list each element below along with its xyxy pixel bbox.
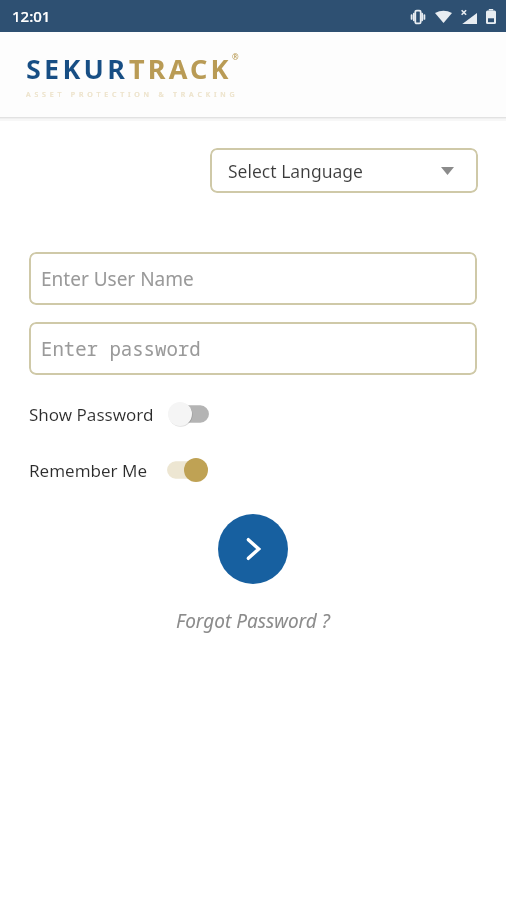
- button[interactable]: Show Password: [29, 396, 214, 432]
- staticText: Enter password: [41, 336, 201, 362]
- staticText: 12:01: [12, 6, 51, 26]
- staticText: ®: [232, 51, 239, 62]
- staticText: SEKUR: [26, 50, 129, 87]
- staticText: Enter User Name: [41, 266, 194, 292]
- button[interactable]: Enter password: [29, 322, 477, 375]
- button[interactable]: Select Language: [210, 148, 478, 193]
- button[interactable]: Sign in: [218, 514, 288, 584]
- staticText: Select Language: [228, 159, 363, 183]
- staticText: A S S E T P R O T E C T I O N & T R A C …: [26, 90, 236, 100]
- button[interactable]: Enter User Name: [29, 252, 477, 305]
- button[interactable]: Remember Me: [29, 452, 208, 488]
- staticText: Show Password: [29, 403, 154, 426]
- button[interactable]: Forgot Password ?: [168, 605, 338, 637]
- staticText: TRACK: [129, 50, 232, 87]
- staticText: Remember Me: [29, 459, 148, 482]
